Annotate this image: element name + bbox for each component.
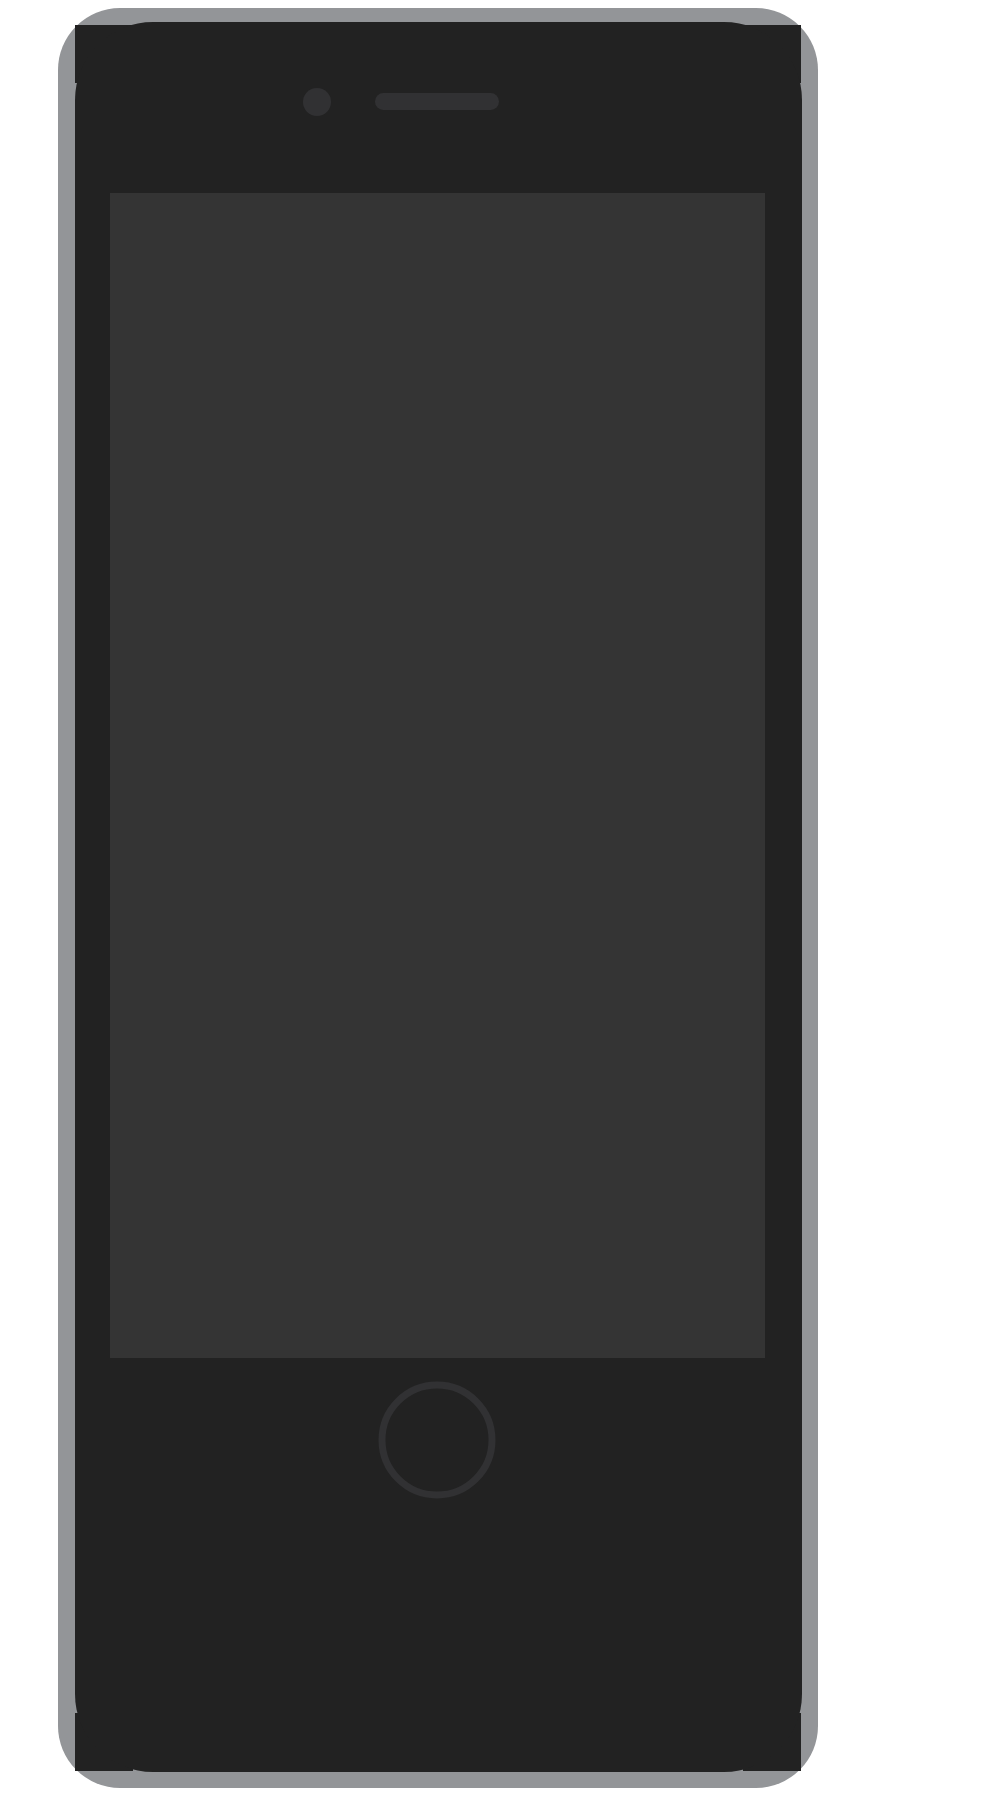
- button[interactable]: Smartphone device mockup with blank scre…: [0, 0, 1000, 1800]
